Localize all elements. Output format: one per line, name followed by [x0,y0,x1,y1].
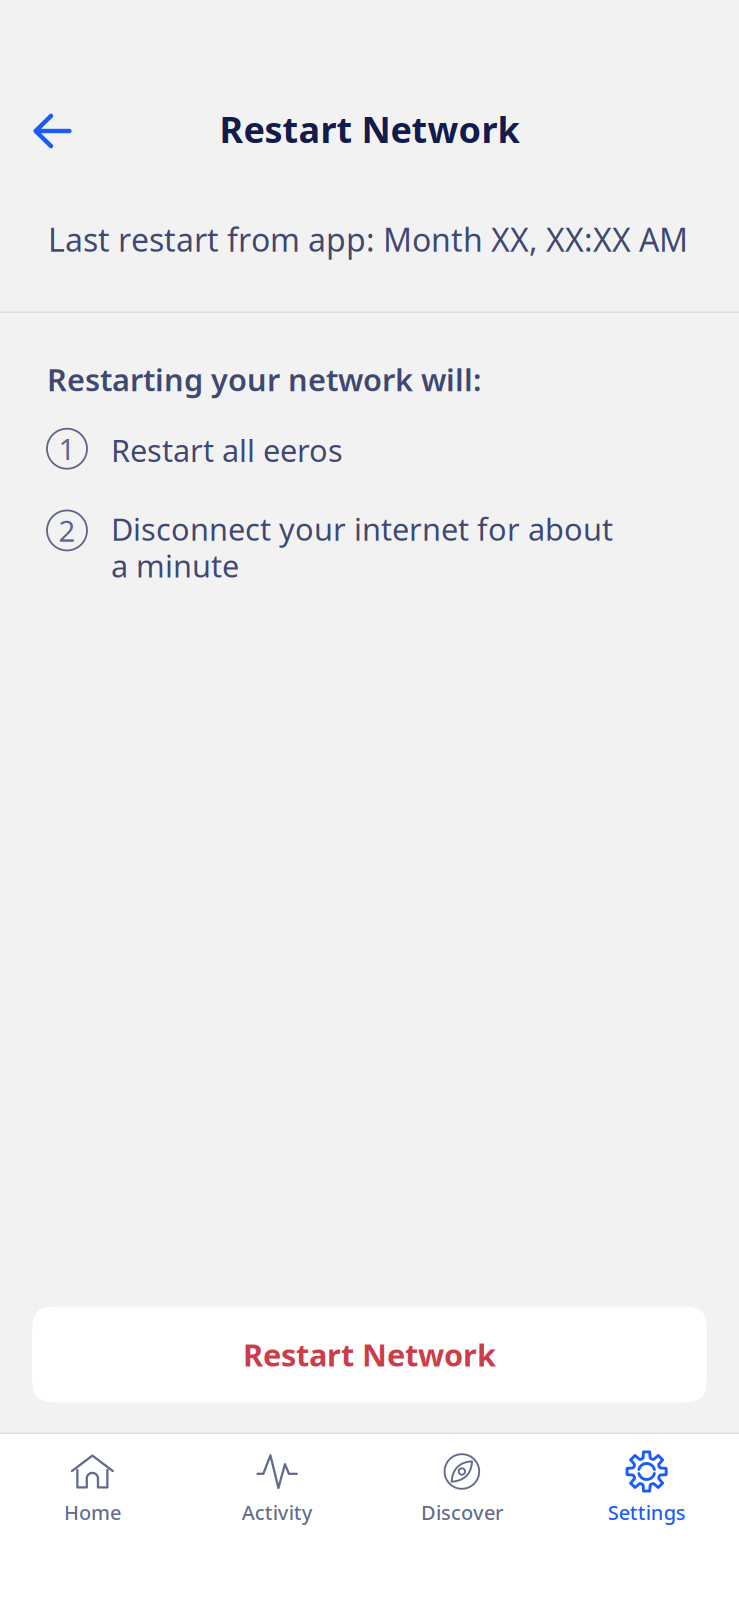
staticText: Discover [421,1499,503,1526]
button[interactable]: Settings [554,1434,739,1598]
staticText: Activity [242,1499,313,1526]
staticText: Disconnect your internet for about a min… [111,508,613,586]
button[interactable]: Discover [369,1434,554,1598]
staticText: 1 [58,429,75,468]
staticText: 2 [58,511,75,550]
staticText: Restart Network [219,105,519,153]
staticText: Last restart from app: Month XX, XX:XX A… [48,218,688,260]
button[interactable]: Back [0,95,99,158]
button[interactable]: Restart Network [32,1306,707,1402]
staticText: Restarting your network will: [47,359,481,400]
staticText: Home [64,1499,121,1526]
button[interactable]: Home [0,1434,185,1598]
staticText: Settings [608,1499,686,1526]
button[interactable]: Activity [185,1434,370,1598]
staticText: Restart Network [243,1334,496,1375]
staticText: Restart all eeros [111,430,343,470]
